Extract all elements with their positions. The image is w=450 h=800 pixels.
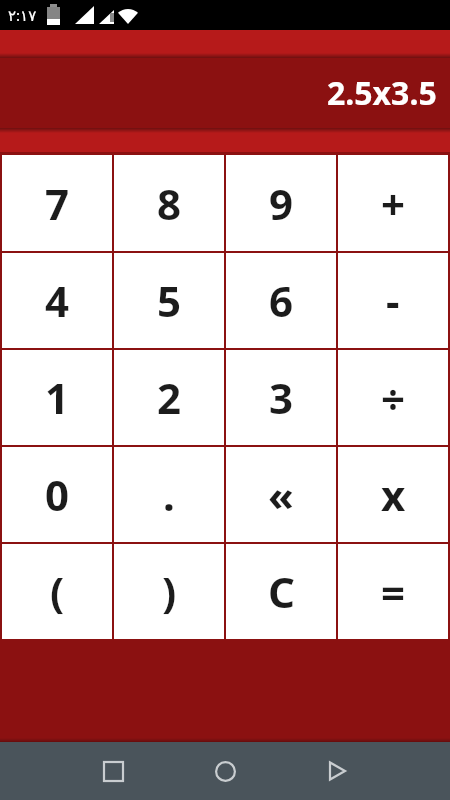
staticText: ( <box>50 563 65 620</box>
staticText: 2 <box>157 369 182 426</box>
button[interactable]: 9 <box>226 155 336 251</box>
staticText: 5 <box>157 272 182 329</box>
staticText: C <box>268 563 295 620</box>
staticText: = <box>381 563 406 620</box>
staticText: 3 <box>269 369 294 426</box>
staticText: x <box>381 466 406 523</box>
staticText: 6 <box>269 272 294 329</box>
button[interactable]: . <box>114 447 224 542</box>
staticText: + <box>381 175 406 232</box>
button[interactable]: 3 <box>226 350 336 445</box>
button[interactable]: 6 <box>226 253 336 348</box>
button[interactable] <box>317 751 357 791</box>
staticText: 8 <box>157 175 182 232</box>
button[interactable]: 7 <box>2 155 112 251</box>
staticText: 9 <box>269 175 294 232</box>
staticText: 1 <box>45 369 70 426</box>
button[interactable] <box>93 751 133 791</box>
button[interactable]: « <box>226 447 336 542</box>
staticText: « <box>268 466 294 523</box>
staticText: ٢:١٧ <box>8 5 37 25</box>
staticText: 2.5x3.5 <box>327 71 437 115</box>
staticText: ) <box>162 563 177 620</box>
button[interactable]: 5 <box>114 253 224 348</box>
button[interactable]: ( <box>2 544 112 639</box>
button[interactable]: 4 <box>2 253 112 348</box>
staticText: . <box>163 466 175 523</box>
button[interactable]: = <box>338 544 448 639</box>
button[interactable]: x <box>338 447 448 542</box>
button[interactable]: 8 <box>114 155 224 251</box>
staticText: 0 <box>45 466 70 523</box>
button[interactable]: 1 <box>2 350 112 445</box>
staticText: 7 <box>45 175 70 232</box>
button[interactable]: ÷ <box>338 350 448 445</box>
button[interactable] <box>205 751 245 791</box>
button[interactable]: 0 <box>2 447 112 542</box>
staticText: - <box>386 272 400 329</box>
button[interactable]: ) <box>114 544 224 639</box>
button[interactable]: C <box>226 544 336 639</box>
button[interactable]: + <box>338 155 448 251</box>
staticText: 4 <box>45 272 70 329</box>
button[interactable]: 2 <box>114 350 224 445</box>
button[interactable]: - <box>338 253 448 348</box>
staticText: ÷ <box>381 369 406 426</box>
